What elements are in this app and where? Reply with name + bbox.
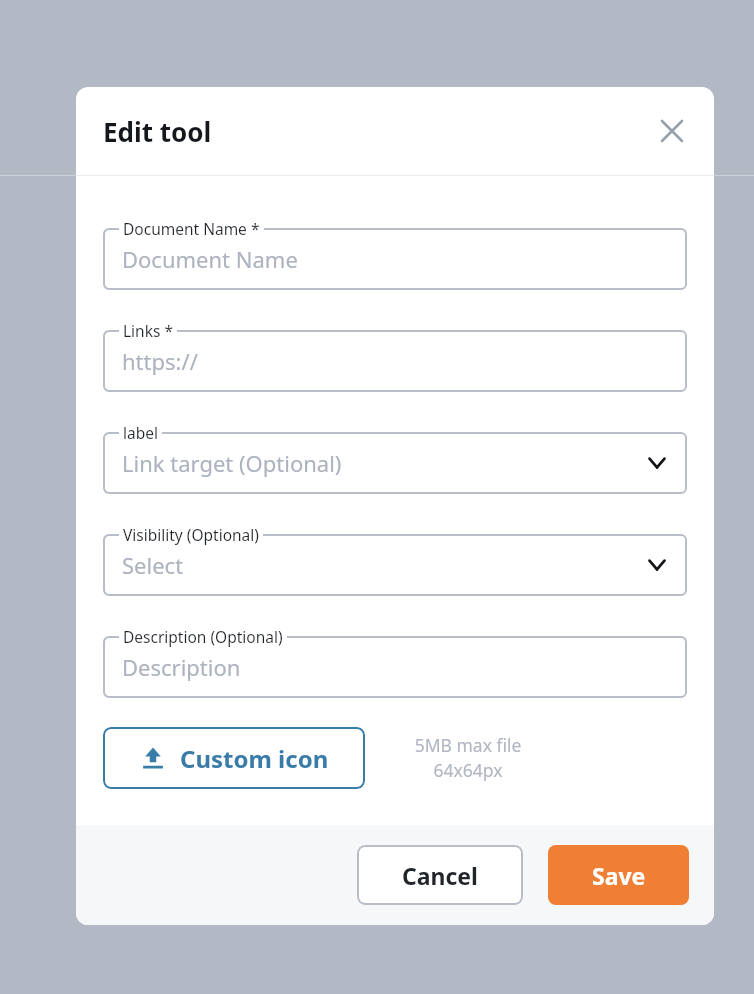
button[interactable]: https:// [103, 320, 687, 392]
staticText: Visibility (Optional) [123, 524, 259, 545]
staticText: Save [592, 860, 646, 891]
staticText: label [123, 422, 158, 443]
button[interactable]: Document Name [103, 218, 687, 290]
button[interactable]: Open Visibility (Optional) dropdown [643, 551, 671, 579]
staticText: Document Name [122, 244, 671, 274]
staticText: Link target (Optional) [122, 448, 643, 478]
button[interactable]: Custom icon [103, 727, 365, 789]
staticText: Links * [123, 320, 173, 341]
staticText: Select [122, 550, 643, 580]
button[interactable]: Close [654, 113, 690, 149]
staticText: Document Name * [123, 218, 260, 239]
button[interactable]: Save [548, 845, 689, 905]
staticText: Description [122, 652, 671, 682]
button[interactable]: Cancel [357, 845, 523, 905]
button[interactable]: Description [103, 626, 687, 698]
button[interactable]: Link target (Optional) [103, 422, 687, 494]
staticText: 5MB max file 64x64px [393, 733, 543, 783]
staticText: Edit tool [103, 114, 212, 149]
staticText: Cancel [402, 860, 478, 891]
staticText: Description (Optional) [123, 626, 283, 647]
staticText: https:// [122, 346, 671, 376]
button[interactable]: Select [103, 524, 687, 596]
staticText: Custom icon [180, 742, 329, 775]
button[interactable]: Open label dropdown [643, 449, 671, 477]
